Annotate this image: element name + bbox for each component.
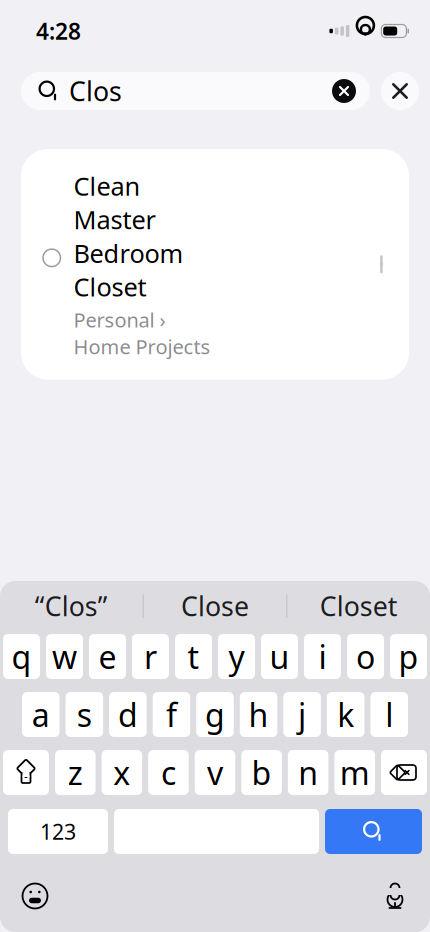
button[interactable]: h	[240, 692, 277, 737]
button[interactable]: Clos	[21, 72, 370, 110]
button[interactable]: d	[109, 692, 147, 737]
staticText: e	[98, 635, 116, 678]
button[interactable]: Closet	[287, 581, 430, 631]
button[interactable]: t	[175, 634, 212, 679]
button[interactable]: c	[148, 750, 189, 795]
staticText: m	[340, 751, 370, 794]
button[interactable]: m	[334, 750, 375, 795]
staticText: Clean Master Bedroom Closet	[73, 169, 183, 304]
staticText: r	[144, 635, 157, 678]
button[interactable]: Clean Master Bedroom Closet	[21, 149, 409, 380]
staticText: v	[207, 751, 223, 794]
staticText: x	[113, 751, 130, 794]
staticText: s	[77, 693, 92, 736]
staticText: b	[252, 751, 272, 794]
staticText: a	[32, 693, 50, 736]
staticText: q	[11, 635, 31, 678]
staticText: j	[298, 693, 306, 736]
button[interactable]: “Clos”	[0, 581, 143, 631]
staticText: i	[318, 635, 326, 678]
staticText: n	[298, 751, 318, 794]
button[interactable]: w	[46, 634, 83, 679]
staticText: h	[249, 693, 269, 736]
staticText: w	[52, 635, 77, 678]
button[interactable]: p	[390, 634, 427, 679]
staticText: d	[118, 693, 138, 736]
staticText: Clos	[69, 73, 122, 109]
button[interactable]: Dictation	[373, 874, 417, 918]
button[interactable]: l	[370, 692, 408, 737]
button[interactable]: v	[195, 750, 235, 795]
button[interactable]: y	[218, 634, 255, 679]
button[interactable]: z	[55, 750, 96, 795]
staticText: l	[385, 693, 393, 736]
button[interactable]: Close search	[381, 72, 419, 110]
button[interactable]: e	[89, 634, 126, 679]
button[interactable]: Search	[325, 809, 422, 854]
button[interactable]: s	[66, 692, 103, 737]
button[interactable]: Close	[144, 581, 286, 631]
button[interactable]: f	[153, 692, 190, 737]
button[interactable]: Shift	[3, 750, 49, 795]
button[interactable]: g	[196, 692, 234, 737]
button[interactable]: b	[241, 750, 282, 795]
button[interactable]: r	[132, 634, 169, 679]
staticText: z	[68, 751, 83, 794]
button[interactable]: i	[304, 634, 341, 679]
staticText: Personal › Home Projects	[73, 307, 210, 360]
staticText: “Clos”	[35, 588, 108, 624]
staticText: 4:28	[36, 16, 81, 46]
staticText: Close	[181, 588, 249, 624]
staticText: f	[166, 693, 177, 736]
button[interactable]: 123	[8, 809, 108, 854]
staticText: g	[205, 693, 225, 736]
button[interactable]: x	[102, 750, 142, 795]
button[interactable]: n	[288, 750, 328, 795]
button[interactable]: a	[22, 692, 60, 737]
staticText: u	[269, 635, 289, 678]
staticText: y	[228, 635, 244, 678]
staticText: p	[398, 635, 418, 678]
staticText: k	[337, 693, 354, 736]
staticText: c	[161, 751, 176, 794]
staticText: 123	[40, 817, 76, 846]
button[interactable]: j	[283, 692, 321, 737]
button[interactable]: k	[327, 692, 364, 737]
button[interactable]: Emoji keyboard	[13, 874, 57, 918]
button[interactable]: o	[347, 634, 384, 679]
staticText: t	[187, 635, 199, 678]
button[interactable]: Delete	[381, 750, 427, 795]
button[interactable]: q	[3, 634, 40, 679]
staticText: Closet	[320, 588, 398, 624]
button[interactable]: u	[261, 634, 298, 679]
staticText: o	[356, 635, 375, 678]
